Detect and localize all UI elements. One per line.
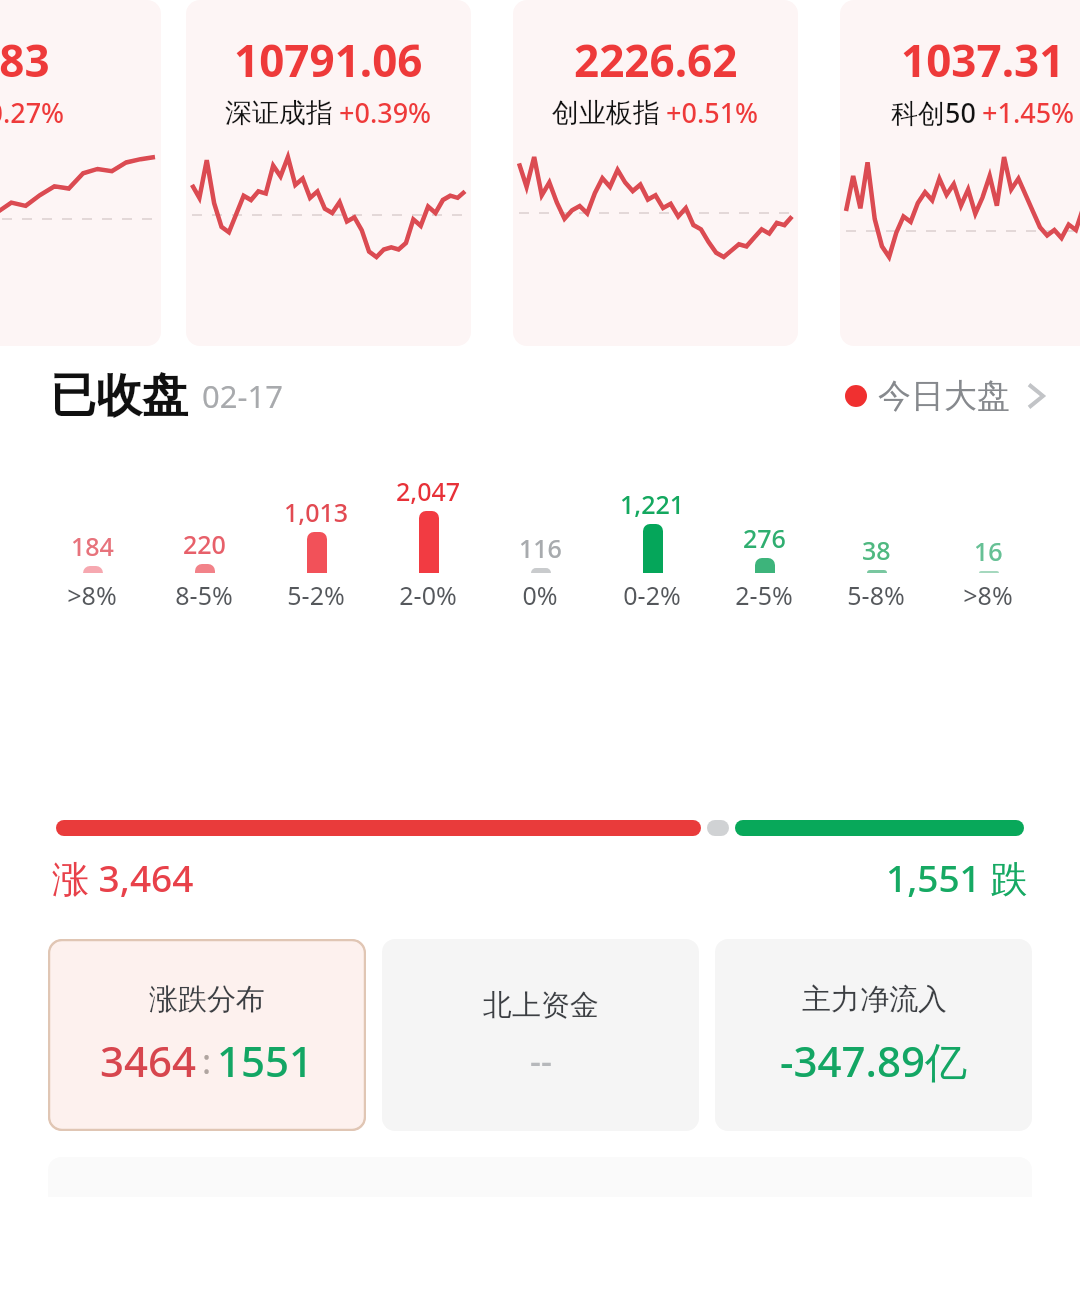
staticText: 涨 3,464 [52,852,194,903]
staticText: 1,551 跌 [886,852,1028,903]
button[interactable]: 2,047 [372,474,484,612]
staticText: 10791.06 [234,30,423,90]
button[interactable]: 北上资金 [382,939,699,1131]
button[interactable]: 184 [36,474,148,612]
staticText: .83 [0,30,50,90]
staticText: 5-8% [847,578,905,612]
staticText: 科创50 [891,94,976,131]
staticText: 0-2% [623,578,681,612]
button[interactable]: 16 [932,474,1044,612]
staticText: 1,013 [284,495,349,529]
button[interactable]: 116 [484,474,596,612]
button[interactable]: 276 [708,474,820,612]
button[interactable]: 10791.06 [186,0,471,346]
staticText: 2-0% [399,578,457,612]
button[interactable]: 220 [148,474,260,612]
button[interactable]: 今日大盘 [841,371,1050,421]
staticText: 16 [974,534,1003,568]
staticText: 02-17 [202,375,283,417]
staticText: 276 [743,521,786,555]
staticText: -347.89亿 [780,1032,968,1089]
staticText: +0.39% [339,94,432,131]
staticText: 创业板指 [552,96,660,130]
staticText: 5-2% [287,578,345,612]
staticText: 北上资金 [483,987,599,1024]
staticText: 116 [519,531,562,565]
button[interactable]: 1,221 [596,474,708,612]
staticText: 1037.31 [901,30,1065,90]
button[interactable]: 涨跌分布 [48,939,366,1131]
staticText: 3464 [100,1032,197,1089]
staticText: 8-5% [175,578,233,612]
staticText: 1,221 [620,487,685,521]
staticText: 38 [862,533,891,567]
button[interactable]: 2226.62 [513,0,798,346]
staticText: 今日大盘 [878,375,1010,417]
staticText: +0.27% [0,94,65,131]
staticText: 已收盘 [50,367,188,425]
button[interactable]: 38 [820,474,932,612]
staticText: 2,047 [396,474,461,508]
staticText: 1551 [217,1032,314,1089]
staticText: 220 [183,527,226,561]
staticText: >8% [963,578,1013,612]
button[interactable]: .83 [0,0,161,346]
button[interactable]: 1,013 [260,474,372,612]
staticText: >8% [67,578,117,612]
staticText: 深证成指 [225,96,333,130]
staticText: -- [530,1038,552,1084]
staticText: 涨跌分布 [149,981,265,1018]
staticText: 2-5% [735,578,793,612]
staticText: 主力净流入 [802,981,947,1018]
staticText: 2226.62 [574,30,738,90]
staticText: +1.45% [982,94,1075,131]
staticText: 0% [522,578,558,612]
button[interactable]: 主力净流入 [715,939,1032,1131]
staticText: : [202,1038,212,1084]
other: View today's market [1026,381,1046,411]
staticText: 184 [71,529,114,563]
staticText: +0.51% [666,94,759,131]
button[interactable]: 1037.31 [840,0,1080,346]
